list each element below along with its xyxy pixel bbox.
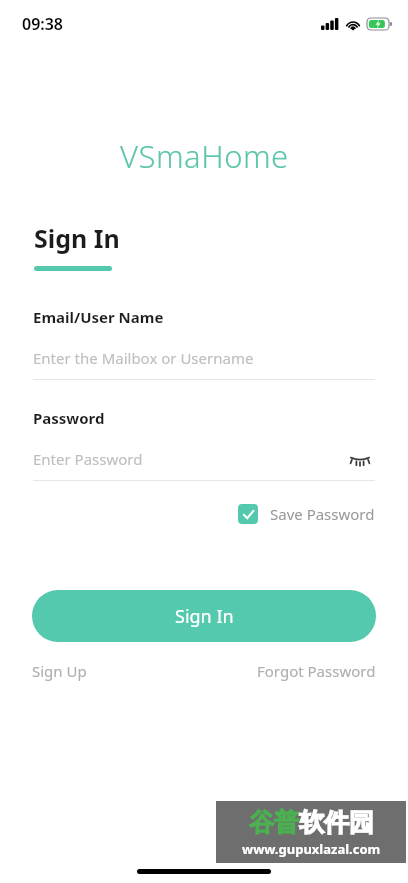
staticText: 谷普 xyxy=(249,807,299,838)
button[interactable]: Show password xyxy=(345,446,375,472)
button[interactable]: Enter the Mailbox or Username xyxy=(33,345,375,371)
staticText: Email/User Name xyxy=(33,307,164,327)
staticText: Enter the Mailbox or Username xyxy=(33,348,254,368)
staticText: www.gupuxlazal.com xyxy=(242,840,381,858)
button[interactable]: Sign Up xyxy=(32,658,87,684)
staticText: Password xyxy=(33,408,105,428)
staticText: Save Password xyxy=(270,504,375,524)
staticText: 09:38 xyxy=(22,13,64,35)
staticText: Sign In xyxy=(34,221,120,255)
button[interactable]: Enter Password xyxy=(33,446,345,472)
button[interactable]: Forgot Password xyxy=(257,658,376,684)
staticText: Forgot Password xyxy=(257,661,376,681)
staticText: Sign Up xyxy=(32,661,87,681)
staticText: VSmaHome xyxy=(120,135,289,177)
staticText: 软件园 xyxy=(299,807,374,838)
staticText: Sign In xyxy=(175,604,234,629)
button[interactable]: Save Password xyxy=(238,500,375,528)
button[interactable]: Sign In xyxy=(32,590,376,642)
staticText: Enter Password xyxy=(33,449,143,469)
